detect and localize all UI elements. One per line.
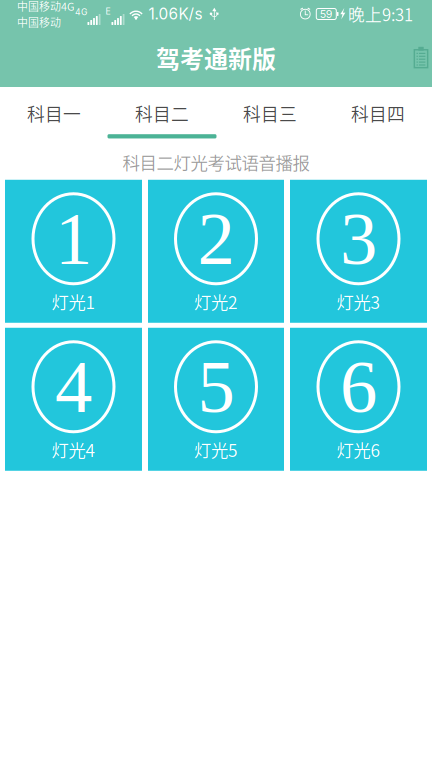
staticText: 灯光5 [194,437,238,462]
staticText: 1 [55,197,92,280]
staticText: 4 [55,345,92,428]
staticText: 科目二灯光考试语音播报 [122,149,309,175]
staticText: 灯光2 [194,289,238,314]
button[interactable]: 科目二 [108,87,216,143]
staticText: 1.06K/s [148,5,202,23]
button[interactable]: 6 [290,328,427,471]
button[interactable]: 题库 [403,30,432,85]
staticText: 4G [75,7,87,17]
staticText: 中国移动 [17,14,61,30]
staticText: 3 [340,197,377,280]
button[interactable]: 4 [5,328,142,471]
staticText: 灯光3 [336,289,380,314]
staticText: 科目四 [351,100,405,126]
staticText: 科目二 [135,100,189,126]
staticText: 59 [320,7,333,20]
staticText: 6 [340,345,377,428]
staticText: 2 [197,197,234,280]
staticText: 科目一 [27,100,81,126]
staticText: E [105,6,110,16]
staticText: 驾考通新版 [156,40,276,75]
button[interactable]: 1 [5,180,142,323]
button[interactable]: 3 [290,180,427,323]
button[interactable]: 科目一 [0,87,108,143]
staticText: 中国移动4G [17,0,74,14]
button[interactable]: 科目四 [324,87,432,143]
button[interactable]: 5 [148,328,284,471]
staticText: 灯光1 [51,289,95,314]
button[interactable]: 科目三 [216,87,324,143]
staticText: 晚上9:31 [348,2,413,26]
button[interactable]: 2 [148,180,284,323]
staticText: 5 [197,345,234,428]
staticText: 科目三 [243,100,297,126]
staticText: 灯光6 [336,437,380,462]
staticText: 灯光4 [51,437,95,462]
